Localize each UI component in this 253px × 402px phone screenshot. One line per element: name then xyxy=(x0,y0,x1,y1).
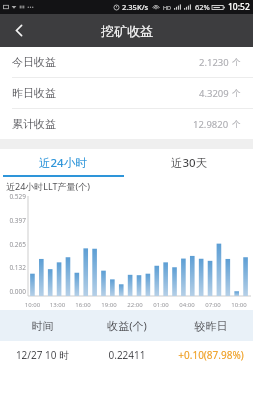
staticText: 0.265 xyxy=(0,240,26,249)
staticText: 12/27 10 时 xyxy=(0,348,85,362)
staticText: 10:52 xyxy=(228,1,250,13)
staticText: 0.529 xyxy=(0,192,26,201)
button[interactable]: 近30天 xyxy=(126,149,253,177)
staticText: 4.3209 xyxy=(199,87,229,100)
staticText: 个 xyxy=(232,88,241,99)
button[interactable]: Back xyxy=(0,14,38,47)
staticText: 0.22411 xyxy=(85,348,169,362)
staticText: 01:00 xyxy=(148,301,174,309)
staticText: 收益(个) xyxy=(85,318,169,333)
staticText: 昨日收益 xyxy=(12,86,56,100)
staticText: 累计收益 xyxy=(12,117,56,131)
staticText: 挖矿收益 xyxy=(101,23,153,39)
staticText: 今日收益 xyxy=(12,55,56,69)
staticText: 近24小时LLT产量(个) xyxy=(6,180,90,192)
staticText: 2.35K/s xyxy=(122,2,149,12)
staticText: 近30天 xyxy=(171,155,208,171)
staticText: 0.397 xyxy=(0,216,26,225)
staticText: 12.9820 xyxy=(193,118,229,131)
staticText: 13:00 xyxy=(45,301,70,309)
button[interactable]: 近24小时 xyxy=(0,149,126,177)
staticText: 0.000 xyxy=(0,287,26,296)
staticText: 近24小时 xyxy=(39,155,87,171)
staticText: 较昨日 xyxy=(169,319,253,333)
staticText: HD xyxy=(163,4,172,11)
button[interactable]: 今日收益 xyxy=(0,47,253,77)
staticText: 16:00 xyxy=(70,301,96,309)
staticText: 04:00 xyxy=(174,301,200,309)
button[interactable]: 累计收益 xyxy=(0,109,253,139)
staticText: 10:00 xyxy=(20,301,45,309)
staticText: 时间 xyxy=(0,319,85,333)
staticText: 0.132 xyxy=(0,263,26,272)
staticText: +0.10(87.98%) xyxy=(169,348,253,362)
staticText: 个 xyxy=(232,57,241,68)
staticText: 2.1230 xyxy=(199,56,229,69)
staticText: 个 xyxy=(232,119,241,130)
staticText: 10:00 xyxy=(226,301,252,309)
staticText: 07:00 xyxy=(200,301,226,309)
staticText: 19:00 xyxy=(96,301,122,309)
staticText: 62% xyxy=(195,2,210,12)
staticText: 22:00 xyxy=(122,301,148,309)
button[interactable]: 12/27 10 时 xyxy=(0,341,253,369)
button[interactable]: 昨日收益 xyxy=(0,78,253,108)
